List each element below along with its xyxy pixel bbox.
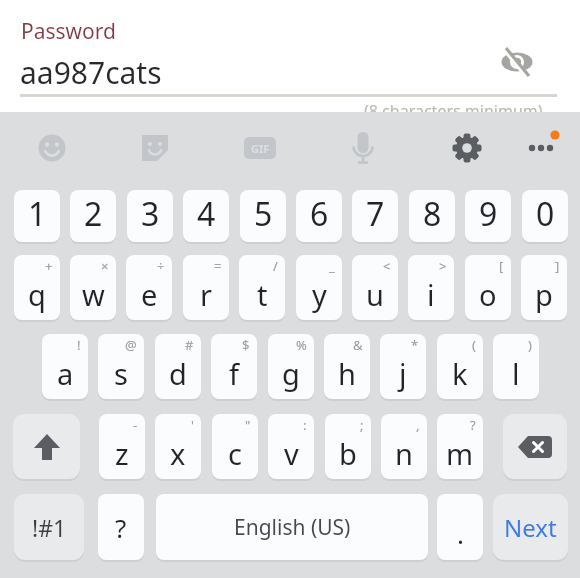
staticText: v [284, 434, 299, 473]
staticText: " [245, 416, 251, 434]
staticText: * [411, 336, 419, 354]
button[interactable]: a [42, 334, 88, 399]
staticText: 8 [423, 192, 442, 236]
staticText: f [229, 354, 239, 393]
staticText: l [512, 354, 520, 393]
button[interactable]: x [155, 414, 201, 479]
staticText: (8 characters minimum) [364, 100, 543, 122]
button[interactable]: 6 [296, 190, 342, 242]
button[interactable]: c [212, 414, 258, 479]
staticText: ( [472, 336, 476, 354]
staticText: w [82, 275, 105, 314]
button[interactable]: b [325, 414, 371, 479]
staticText: u [366, 275, 384, 314]
staticText: , [416, 416, 420, 434]
staticText: ) [528, 336, 532, 354]
staticText: ' [191, 416, 194, 434]
button[interactable]: !#1 [14, 494, 84, 560]
staticText: d [169, 354, 187, 393]
button[interactable] [447, 128, 487, 168]
button[interactable] [13, 414, 80, 479]
button[interactable]: h [324, 334, 370, 399]
staticText: e [141, 275, 158, 314]
staticText: h [338, 354, 356, 393]
button[interactable]: 9 [465, 190, 511, 242]
staticText: c [228, 434, 242, 473]
staticText: . [457, 516, 464, 551]
staticText: Next [504, 511, 557, 544]
button[interactable]: k [437, 334, 483, 399]
staticText: 5 [254, 192, 273, 236]
button[interactable]: f [211, 334, 257, 399]
staticText: x [170, 434, 186, 473]
staticText: ÷ [157, 257, 165, 275]
button[interactable]: y [296, 255, 342, 320]
staticText: i [427, 275, 435, 314]
staticText: t [257, 275, 268, 314]
button[interactable]: i [408, 255, 454, 320]
button[interactable]: 8 [409, 190, 455, 242]
button[interactable]: 5 [240, 190, 286, 242]
staticText: # [185, 336, 194, 354]
button[interactable]: j [380, 334, 426, 399]
button[interactable]: e [126, 255, 172, 320]
button[interactable]: u [352, 255, 398, 320]
button[interactable]: n [381, 414, 427, 479]
button[interactable] [32, 128, 72, 168]
button[interactable]: GIF [244, 137, 276, 159]
button[interactable]: p [521, 255, 567, 320]
staticText: 7 [366, 192, 385, 236]
staticText: : [303, 416, 307, 434]
staticText: 6 [310, 192, 329, 236]
staticText: 4 [197, 192, 216, 236]
staticText: k [452, 354, 468, 393]
staticText: r [200, 275, 212, 314]
staticText: ? [470, 416, 476, 434]
button[interactable]: v [268, 414, 314, 479]
staticText: × [101, 257, 109, 275]
staticText: !#1 [32, 512, 67, 543]
button[interactable]: g [268, 334, 314, 399]
staticText: [ [499, 257, 504, 275]
button[interactable] [503, 414, 567, 479]
button[interactable]: 1 [14, 190, 60, 242]
button[interactable]: 4 [183, 190, 229, 242]
button[interactable]: d [155, 334, 201, 399]
staticText: Password [21, 17, 116, 46]
button[interactable]: 2 [70, 190, 116, 242]
staticText: ? [115, 510, 127, 545]
staticText: a [57, 354, 74, 393]
staticText: $ [242, 336, 250, 354]
button[interactable]: z [99, 414, 145, 479]
button[interactable]: t [239, 255, 285, 320]
button[interactable]: . [437, 494, 483, 560]
button[interactable]: Next [493, 494, 568, 560]
staticText: + [45, 257, 53, 275]
button[interactable]: 0 [522, 190, 568, 242]
staticText: _ [329, 257, 335, 275]
button[interactable] [500, 48, 534, 80]
staticText: z [115, 434, 129, 473]
button[interactable]: w [70, 255, 116, 320]
button[interactable]: r [183, 255, 229, 320]
staticText: @ [125, 336, 137, 354]
button[interactable]: English (US) [156, 494, 428, 560]
staticText: 2 [84, 192, 103, 236]
button[interactable]: ? [98, 494, 144, 560]
staticText: 3 [141, 192, 160, 236]
staticText: q [28, 275, 46, 314]
staticText: m [446, 434, 474, 473]
button[interactable]: q [14, 255, 60, 320]
button[interactable]: l [493, 334, 539, 399]
button[interactable]: 7 [352, 190, 398, 242]
button[interactable]: s [98, 334, 144, 399]
staticText: 0 [536, 192, 555, 236]
staticText: j [399, 354, 407, 393]
button[interactable] [521, 128, 565, 168]
button[interactable] [343, 128, 383, 168]
button[interactable] [135, 128, 175, 168]
button[interactable]: o [465, 255, 511, 320]
staticText: 9 [479, 192, 498, 236]
button[interactable]: m [437, 414, 483, 479]
button[interactable]: 3 [127, 190, 173, 242]
